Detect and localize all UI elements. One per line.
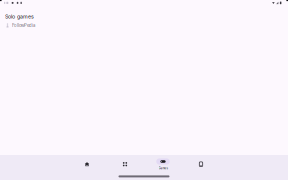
button[interactable]: Device [188, 158, 214, 170]
button[interactable]: Home [74, 158, 100, 170]
staticText: FollowPedia [12, 23, 35, 28]
button[interactable]: Apps [112, 158, 138, 170]
button[interactable]: Games [150, 158, 176, 170]
staticText: Solo games [5, 13, 34, 20]
staticText: Games [158, 167, 167, 170]
